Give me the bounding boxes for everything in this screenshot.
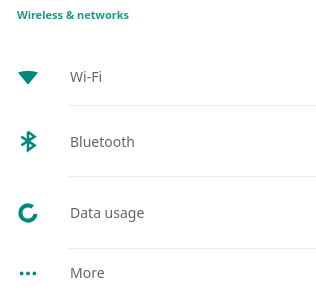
staticText: Wireless & networks [17, 7, 130, 22]
staticText: Wi-Fi [70, 67, 103, 86]
other: More [0, 249, 56, 296]
staticText: Data usage [70, 203, 145, 222]
staticText: Bluetooth [70, 132, 135, 151]
other: Bluetooth [0, 106, 56, 176]
other: Wi-Fi [0, 48, 56, 105]
other: Data usage [0, 177, 56, 248]
button[interactable]: Data usage [0, 177, 316, 248]
staticText: More [70, 263, 105, 282]
button[interactable]: More [0, 249, 316, 296]
button[interactable]: Bluetooth [0, 106, 316, 176]
button[interactable]: Wi-Fi [0, 48, 316, 105]
